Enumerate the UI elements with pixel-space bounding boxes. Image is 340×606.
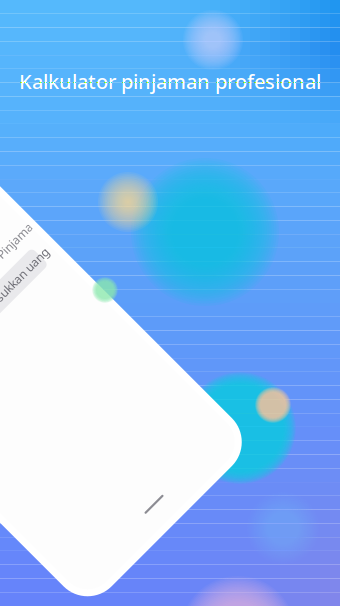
staticText: Kalkulator pinjaman profesional — [19, 68, 321, 95]
staticText: Jumlah Pinjaman — [29, 275, 122, 291]
